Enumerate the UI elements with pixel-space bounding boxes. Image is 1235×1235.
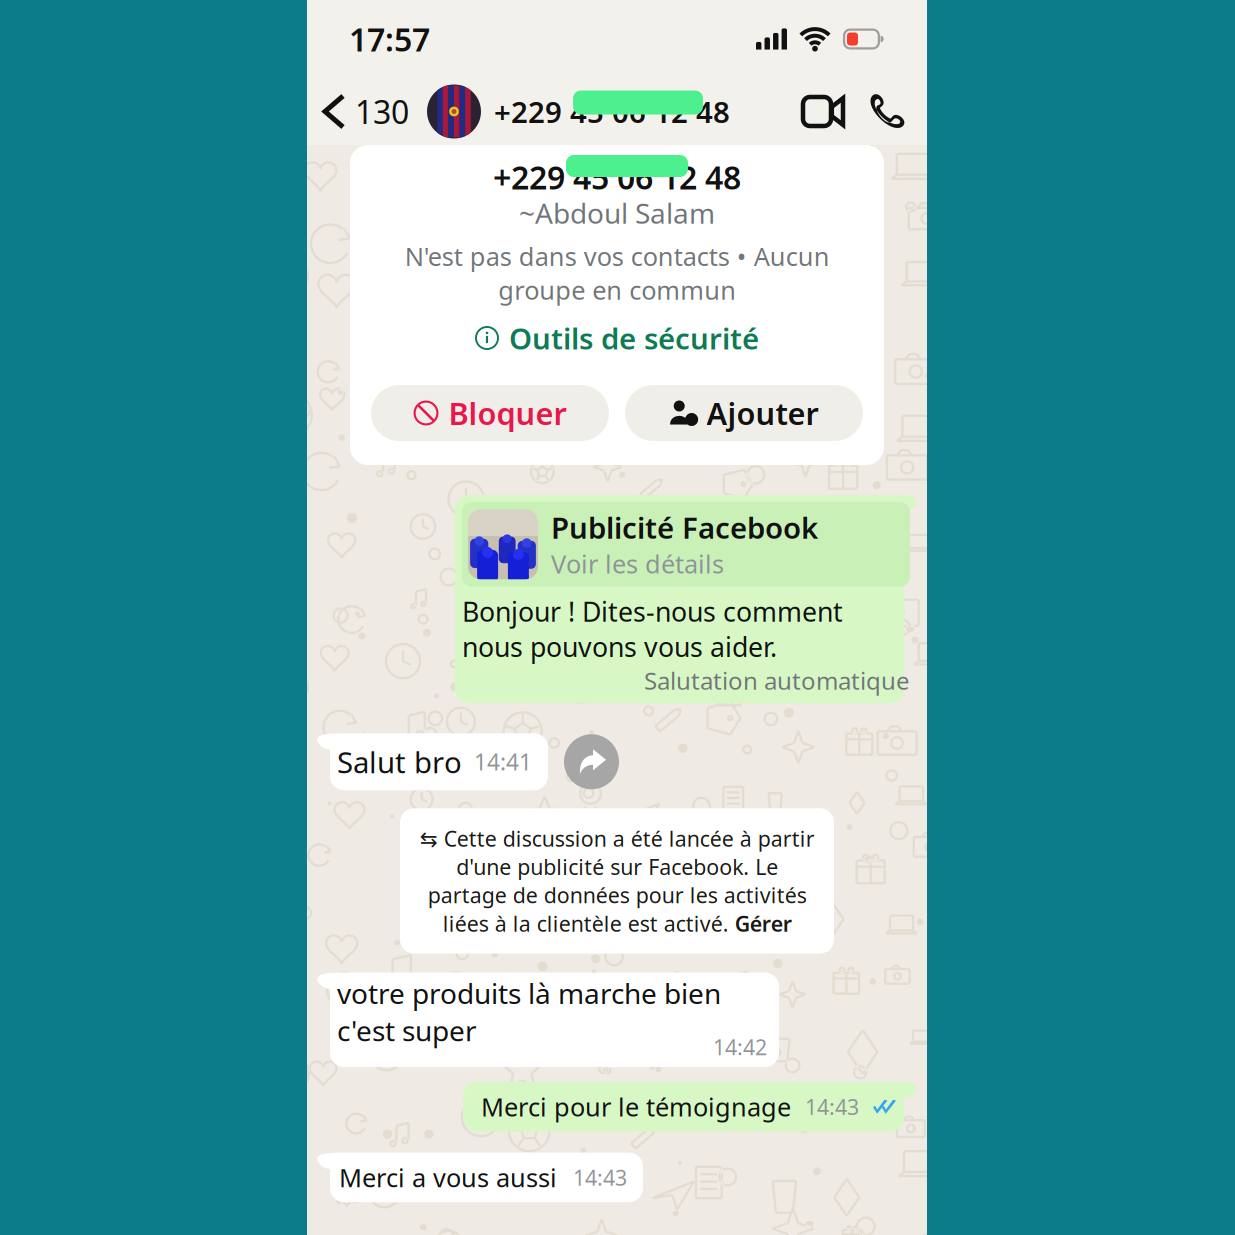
staticText: 130 <box>355 90 409 133</box>
button[interactable]: Ajouter <box>625 385 863 441</box>
staticText: 14:42 <box>713 1033 767 1061</box>
button[interactable]: Appel vidéo <box>797 87 849 136</box>
staticText: +229 45 06 12 48 <box>494 92 730 131</box>
staticText: N'est pas dans vos contacts • Aucun grou… <box>404 239 829 307</box>
staticText: votre produits là marche bien c'est supe… <box>337 975 721 1049</box>
button[interactable]: Transférer <box>564 734 619 789</box>
staticText: Ajouter <box>706 393 818 433</box>
staticText: 14:41 <box>474 747 532 777</box>
staticText: ~Abdoul Salam <box>519 194 715 232</box>
staticText: ⇆ Cette discussion a été lancée à partir… <box>419 824 814 937</box>
staticText: +229 45 06 12 48 <box>493 156 741 198</box>
button[interactable]: Appel vocal <box>865 85 909 137</box>
staticText: Publicité Facebook <box>551 508 818 547</box>
staticText: Salutation automatique <box>644 664 910 696</box>
button[interactable]: Outils de sécurité <box>475 317 759 359</box>
staticText: Merci a vous aussi <box>339 1161 557 1194</box>
staticText: Voir les détails <box>551 547 724 581</box>
staticText: Merci pour le témoignage <box>481 1090 791 1123</box>
staticText: Bonjour ! Dites-nous comment nous pouvon… <box>462 594 843 664</box>
staticText: 14:43 <box>805 1093 859 1121</box>
staticText: Salut bro <box>337 742 462 781</box>
button[interactable]: Bloquer <box>371 385 609 441</box>
staticText: Bloquer <box>448 393 566 433</box>
staticText: 17:57 <box>349 18 430 60</box>
button[interactable]: 130 <box>321 90 413 133</box>
staticText: 14:43 <box>573 1163 627 1191</box>
staticText: Outils de sécurité <box>509 318 759 357</box>
button[interactable]: +229 45 06 12 48 <box>427 84 730 138</box>
